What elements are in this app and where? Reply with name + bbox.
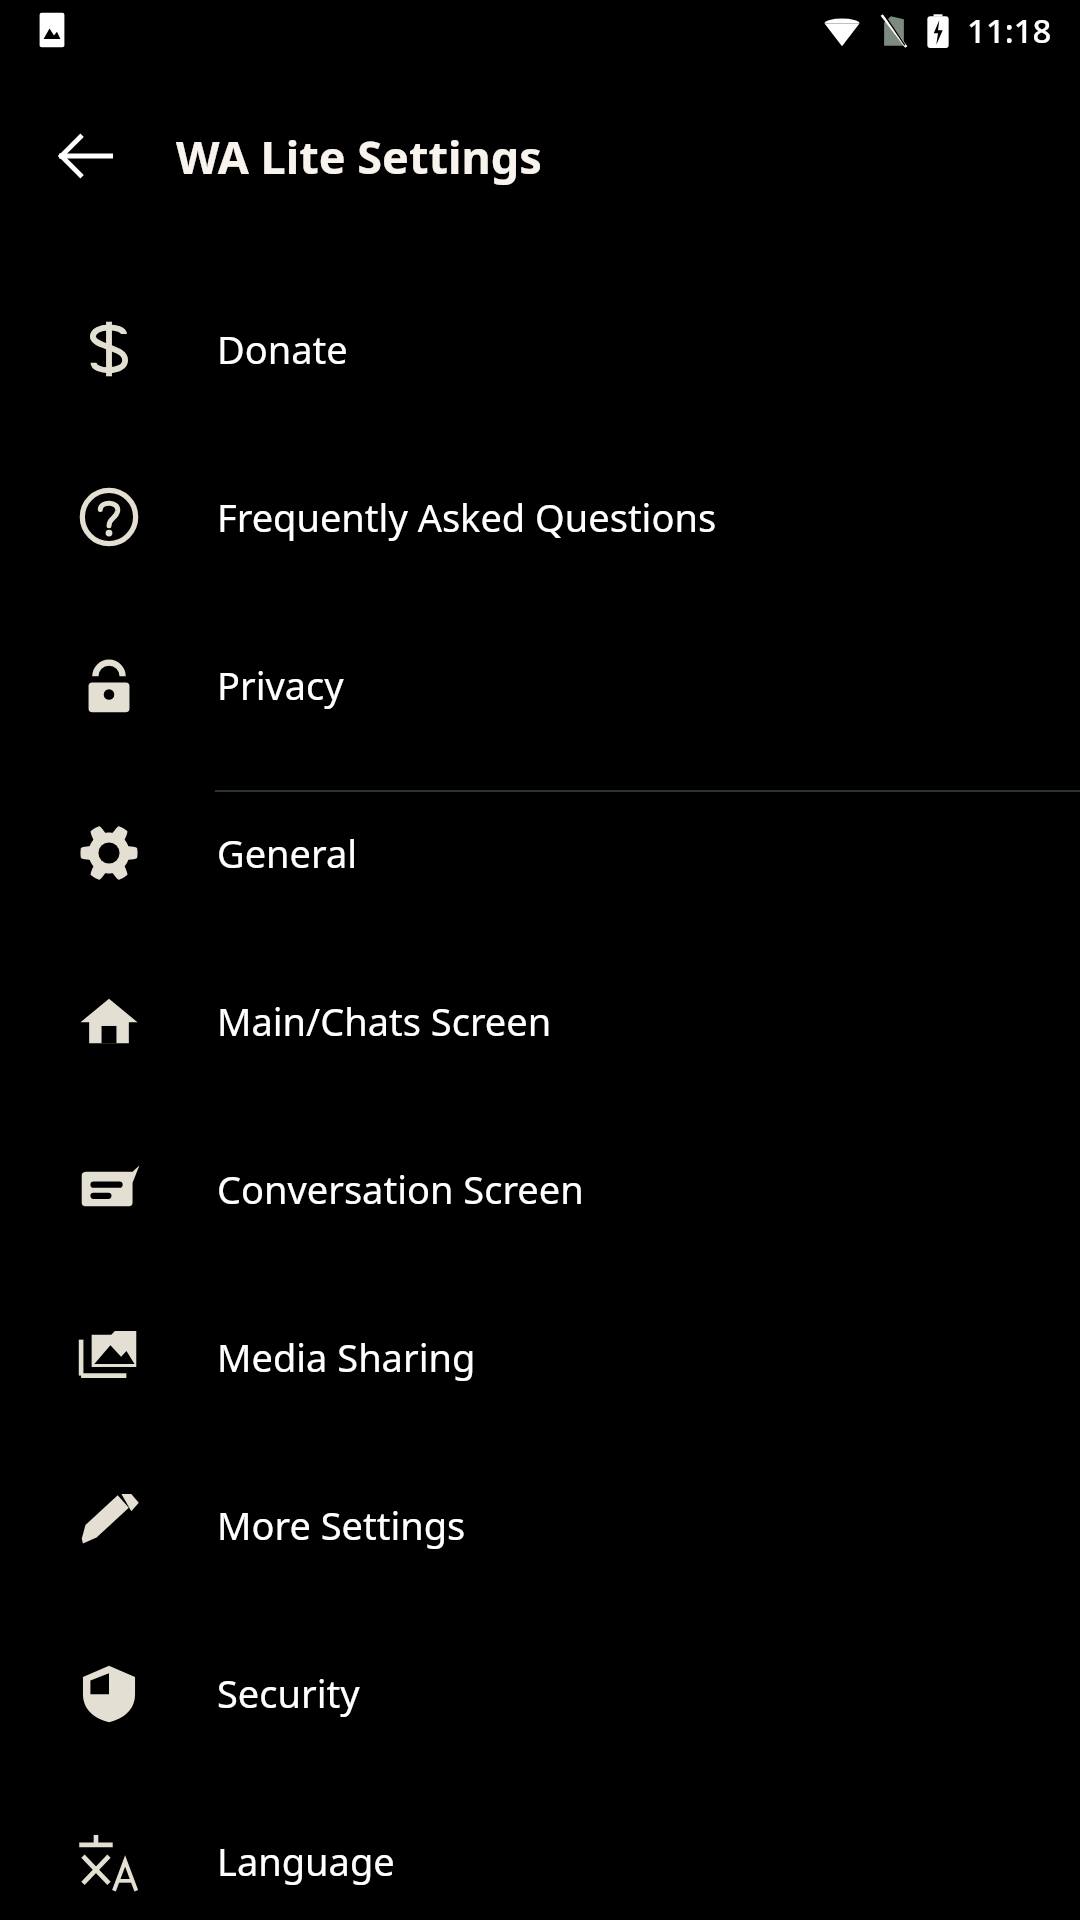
staticText: Main/Chats Screen <box>217 995 552 1047</box>
button[interactable]: Frequently Asked Questions <box>0 433 1080 601</box>
staticText: Media Sharing <box>217 1331 476 1383</box>
staticText: Privacy <box>217 659 344 711</box>
staticText: Language <box>217 1835 395 1887</box>
staticText: Conversation Screen <box>217 1163 584 1215</box>
staticText: Security <box>217 1667 360 1719</box>
staticText: 11:18 <box>967 8 1052 53</box>
button[interactable]: Back <box>34 108 138 204</box>
staticText: More Settings <box>217 1499 466 1551</box>
button[interactable]: Privacy <box>0 601 1080 769</box>
button[interactable]: Donate <box>0 265 1080 433</box>
staticText: WA Lite Settings <box>176 126 542 187</box>
staticText: Donate <box>217 323 348 375</box>
button[interactable]: Main/Chats Screen <box>0 937 1080 1105</box>
button[interactable]: Language <box>0 1777 1080 1920</box>
button[interactable]: Media Sharing <box>0 1273 1080 1441</box>
button[interactable]: More Settings <box>0 1441 1080 1609</box>
staticText: Frequently Asked Questions <box>217 491 717 543</box>
button[interactable]: Security <box>0 1609 1080 1777</box>
staticText: General <box>217 827 358 879</box>
button[interactable]: General <box>0 769 1080 937</box>
button[interactable]: Conversation Screen <box>0 1105 1080 1273</box>
